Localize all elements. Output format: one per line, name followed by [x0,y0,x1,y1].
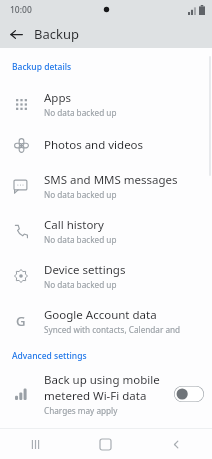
staticText: Google Account data [44,307,157,323]
staticText: Backup details [12,61,72,73]
staticText: Advanced settings [12,350,87,362]
staticText: SMS and MMS messages [44,172,178,188]
staticText: No data backed up [44,107,117,118]
staticText: Apps [44,90,72,106]
staticText: Backup [34,25,79,43]
staticText: No data backed up [44,189,117,200]
button[interactable]: Recent apps [0,429,70,459]
staticText: 10:00 [10,4,32,16]
staticText: metered Wi-Fi data [44,388,147,404]
button[interactable]: Back [141,429,212,459]
staticText: No data backed up [44,279,117,290]
staticText: Synced with contacts, Calendar and more [44,324,200,335]
button[interactable]: Back up using mobile or metered Wi-Fi da… [174,386,204,402]
staticText: Charges may apply [44,405,118,416]
staticText: G [16,312,26,330]
staticText: Back up using mobile or [44,372,170,388]
button[interactable]: Home [70,429,141,459]
button[interactable]: Device settings [0,253,212,298]
staticText: Call history [44,217,104,233]
button[interactable]: Photos and videos [0,126,212,163]
button[interactable]: Call history [0,208,212,253]
staticText: Photos and videos [44,137,144,153]
button[interactable]: SMS and MMS messages [0,163,212,208]
button[interactable]: Apps [0,81,212,126]
button[interactable]: Back up using mobile or [0,368,212,420]
button[interactable]: Back [5,23,27,45]
button[interactable]: G [0,298,212,343]
staticText: Device settings [44,262,126,278]
staticText: No data backed up [44,234,117,245]
